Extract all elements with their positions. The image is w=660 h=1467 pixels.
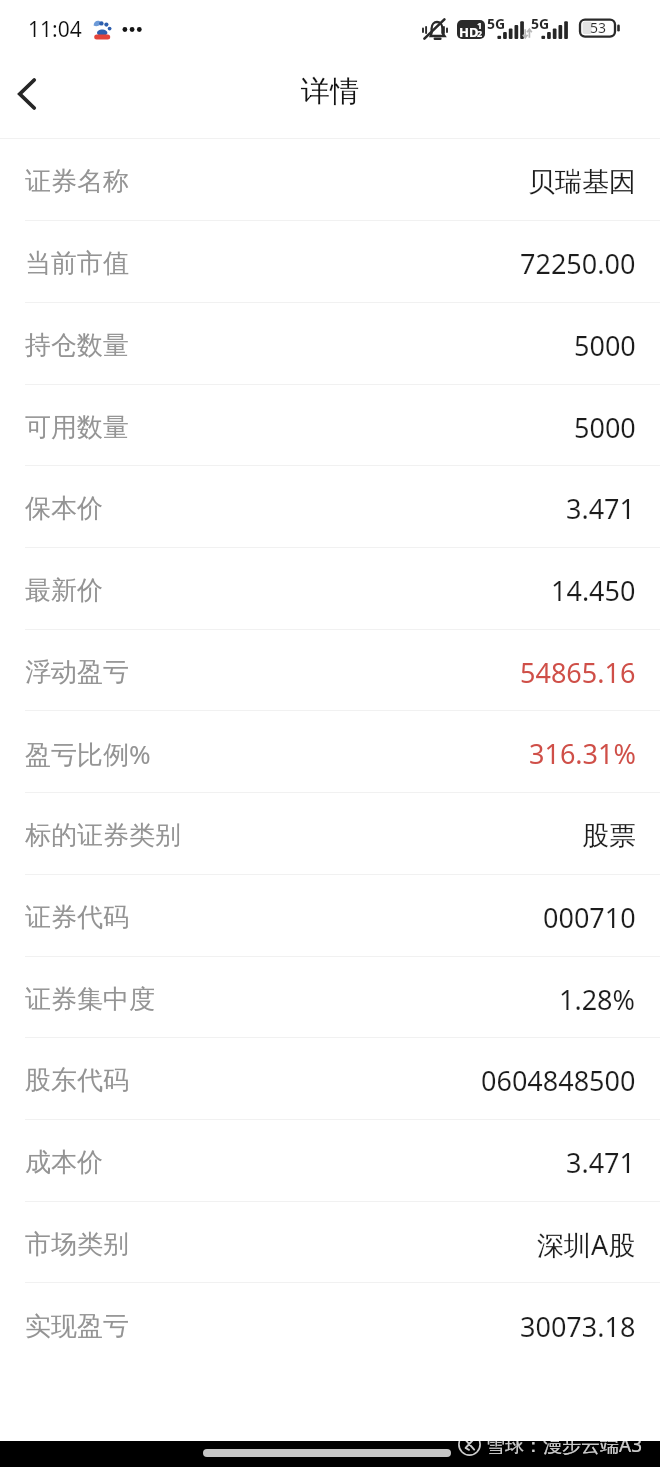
staticText: 3.471	[566, 490, 636, 527]
button[interactable]: 当前市值	[0, 221, 660, 302]
button[interactable]: 实现盈亏	[0, 1283, 660, 1365]
staticText: HD	[459, 23, 479, 39]
staticText: 证券代码	[25, 901, 129, 934]
staticText: 1.28%	[559, 981, 636, 1018]
staticText: 5G	[531, 14, 550, 33]
staticText: 股东代码	[25, 1064, 129, 1097]
button[interactable]: 证券名称	[0, 139, 660, 220]
staticText: 0604848500	[481, 1062, 636, 1099]
staticText: 316.31%	[529, 735, 636, 772]
staticText: 实现盈亏	[25, 1310, 129, 1343]
button[interactable]: 股东代码	[0, 1038, 660, 1119]
staticText: 标的证券类别	[25, 819, 181, 852]
staticText: 持仓数量	[25, 329, 129, 362]
staticText: 贝瑞基因	[528, 165, 636, 199]
button[interactable]: 最新价	[0, 548, 660, 629]
staticText: 成本价	[25, 1146, 103, 1179]
button[interactable]: 市场类别	[0, 1202, 660, 1282]
staticText: 保本价	[25, 492, 103, 525]
staticText: 证券集中度	[25, 983, 155, 1016]
button[interactable]: 持仓数量	[0, 303, 660, 384]
button[interactable]: 可用数量	[0, 385, 660, 465]
staticText: 雪球：漫步云端A3	[486, 1432, 643, 1458]
button[interactable]: Back	[0, 66, 55, 122]
staticText: 1	[477, 20, 483, 31]
staticText: 当前市值	[25, 247, 129, 280]
staticText: 5000	[574, 327, 636, 364]
button[interactable]: 标的证券类别	[0, 793, 660, 874]
button[interactable]: 成本价	[0, 1120, 660, 1201]
staticText: 详情	[301, 73, 359, 110]
staticText: 证券名称	[25, 165, 129, 198]
button[interactable]: 浮动盈亏	[0, 630, 660, 710]
staticText: 股票	[582, 819, 636, 853]
staticText: 11:04	[28, 15, 82, 44]
button[interactable]: 证券集中度	[0, 957, 660, 1037]
staticText: 5000	[574, 409, 636, 446]
staticText: 浮动盈亏	[25, 656, 129, 689]
staticText: 14.450	[551, 572, 636, 609]
staticText: 可用数量	[25, 411, 129, 444]
staticText: 5G	[487, 14, 506, 33]
button[interactable]: 证券代码	[0, 875, 660, 956]
staticText: 市场类别	[25, 1228, 129, 1261]
staticText: 深圳A股	[537, 1226, 636, 1263]
staticText: 盈亏比例%	[25, 736, 151, 772]
staticText: 最新价	[25, 574, 103, 607]
staticText: 000710	[543, 899, 636, 936]
staticText: 72250.00	[520, 245, 636, 282]
staticText: 53	[590, 18, 607, 37]
staticText: 3.471	[566, 1144, 636, 1181]
staticText: 30073.18	[520, 1308, 636, 1345]
button[interactable]: 保本价	[0, 466, 660, 547]
staticText: 2	[477, 27, 483, 39]
staticText: 54865.16	[520, 654, 636, 691]
button[interactable]: 盈亏比例%	[0, 711, 660, 792]
